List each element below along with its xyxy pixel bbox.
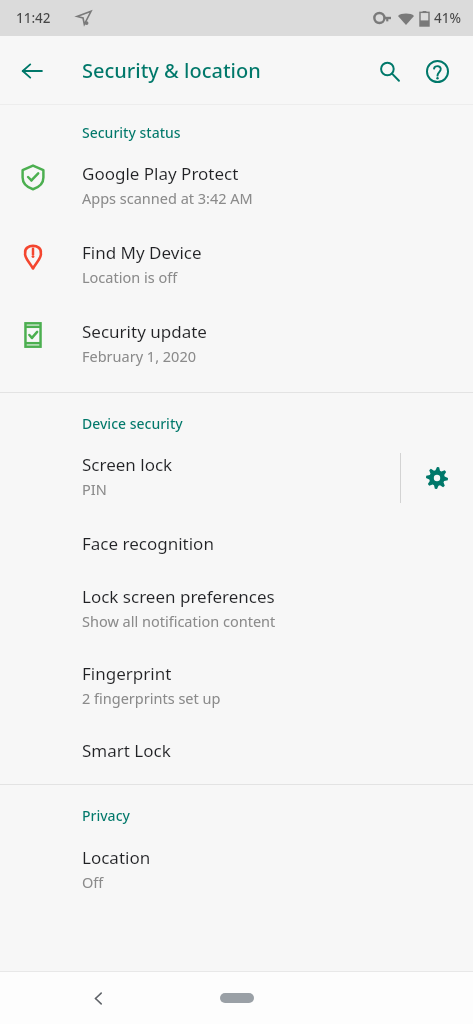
button[interactable]: Help <box>413 47 461 95</box>
staticText: Device security <box>82 414 473 433</box>
button[interactable]: Search <box>365 47 413 95</box>
button[interactable]: Fingerprint <box>0 662 473 708</box>
button[interactable]: Smart Lock <box>0 739 473 762</box>
staticText: Smart Lock <box>82 739 171 762</box>
button[interactable]: Google Play Protect <box>0 162 473 208</box>
staticText: Privacy <box>82 806 473 825</box>
staticText: Show all notification content <box>82 611 276 631</box>
staticText: 41% <box>434 9 461 27</box>
staticText: Apps scanned at 3:42 AM <box>82 188 253 208</box>
button[interactable]: Screen lock <box>0 453 400 499</box>
button[interactable]: Home <box>220 993 254 1003</box>
staticText: Security update <box>82 320 207 343</box>
button[interactable]: Lock screen preferences <box>0 585 473 631</box>
staticText: Location <box>82 846 151 869</box>
button[interactable]: Security update <box>0 320 473 366</box>
staticText: 2 fingerprints set up <box>82 688 221 708</box>
staticText: PIN <box>82 479 107 499</box>
staticText: Off <box>82 872 104 892</box>
staticText: February 1, 2020 <box>82 346 196 366</box>
staticText: Lock screen preferences <box>82 585 275 608</box>
button[interactable]: Location <box>0 846 473 892</box>
staticText: Security & location <box>82 57 261 84</box>
staticText: Location is off <box>82 267 178 287</box>
button[interactable]: Face recognition <box>0 532 473 555</box>
staticText: Google Play Protect <box>82 162 239 185</box>
staticText: Face recognition <box>82 532 214 555</box>
staticText: Screen lock <box>82 453 173 476</box>
staticText: Fingerprint <box>82 662 172 685</box>
button[interactable]: Back <box>8 47 56 95</box>
staticText: Find My Device <box>82 241 202 264</box>
button[interactable]: Find My Device <box>0 241 473 287</box>
button[interactable]: Back <box>78 978 118 1018</box>
staticText: Security status <box>82 123 473 142</box>
button[interactable]: Screen lock settings <box>401 453 473 503</box>
staticText: 11:42 <box>16 9 51 27</box>
